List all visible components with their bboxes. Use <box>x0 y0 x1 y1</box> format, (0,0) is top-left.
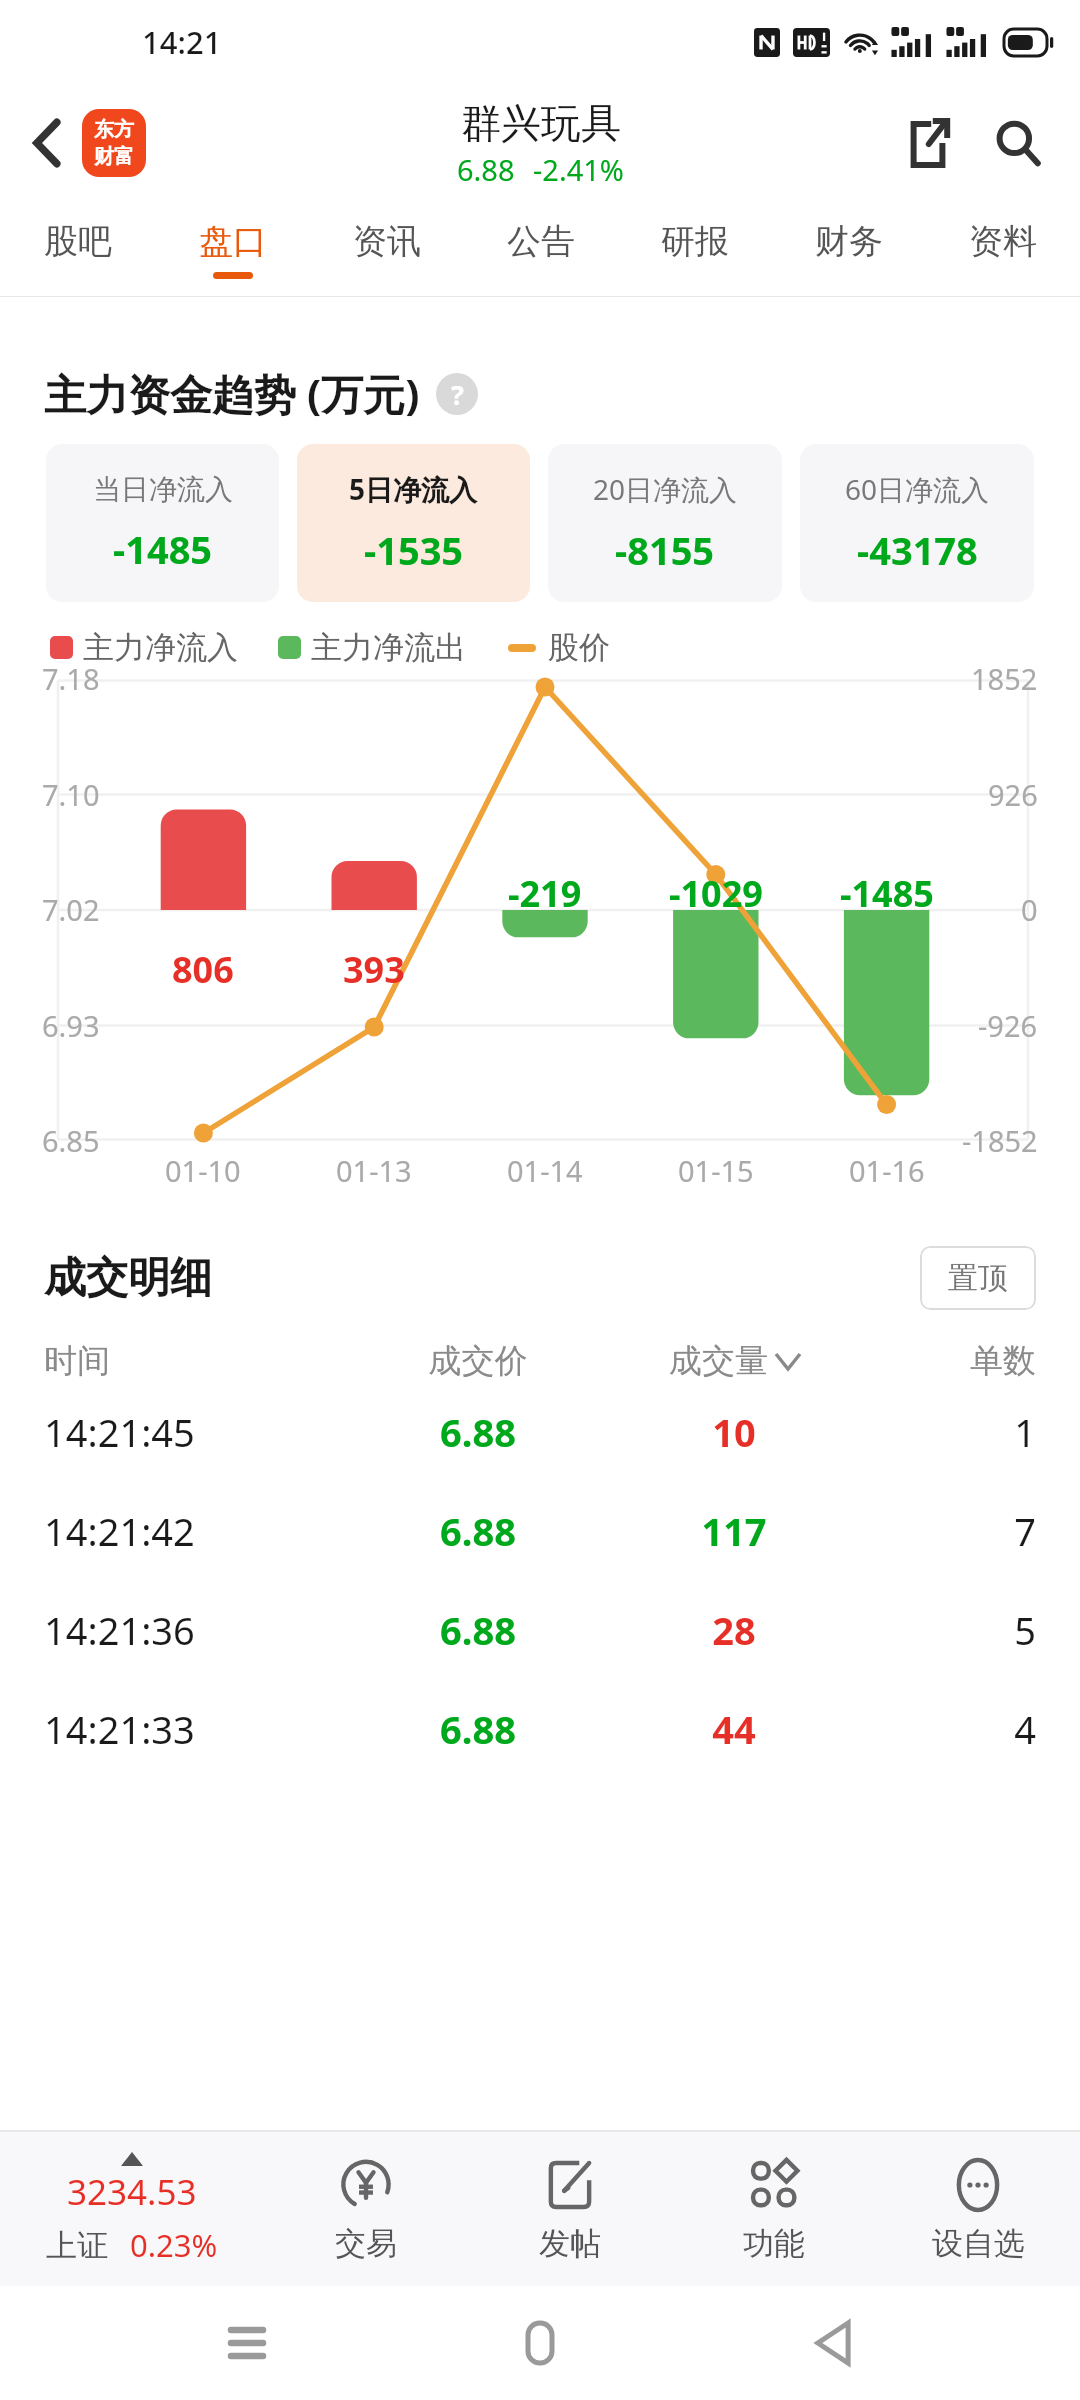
staticText: 3234.53 <box>67 2168 197 2216</box>
staticText: 01-14 <box>507 1151 583 1190</box>
button[interactable]: East Money <box>82 109 146 177</box>
staticText: 群兴玩具 <box>461 98 621 148</box>
staticText: 6.85 <box>42 1121 100 1160</box>
button[interactable]: Back <box>14 110 80 176</box>
button[interactable]: Search <box>980 105 1056 181</box>
staticText: 14:21 <box>142 21 222 63</box>
staticText: 6.93 <box>42 1006 100 1045</box>
staticText: 14:21:42 <box>44 1505 350 1557</box>
staticText: -219 <box>508 869 582 918</box>
button[interactable]: 3234.53 <box>0 2132 264 2286</box>
button[interactable]: 14:21:42 <box>44 1481 1036 1580</box>
button[interactable]: 财务 <box>772 202 926 296</box>
staticText: 置顶 <box>948 1259 1008 1297</box>
staticText: 成交量 <box>669 1340 768 1382</box>
staticText: 股价 <box>548 628 610 667</box>
staticText: 117 <box>606 1505 862 1557</box>
staticText: 60日净流入 <box>845 470 990 508</box>
staticText: 14:21:36 <box>44 1604 350 1656</box>
staticText: 14:21:45 <box>44 1406 350 1458</box>
button[interactable]: Help <box>436 373 478 415</box>
staticText: -2.41% <box>533 150 624 189</box>
staticText: 6.88 <box>350 1406 606 1458</box>
staticText: 设自选 <box>932 2224 1025 2263</box>
staticText: 01-13 <box>336 1151 412 1190</box>
button[interactable]: 置顶 <box>920 1246 1036 1310</box>
staticText: -1029 <box>669 869 763 918</box>
button[interactable]: 交易 <box>264 2132 468 2286</box>
button[interactable]: 14:21:33 <box>44 1679 1036 1778</box>
button[interactable]: 当日净流入 <box>46 444 279 602</box>
button[interactable]: Share <box>890 105 966 181</box>
button[interactable]: 5日净流入 <box>297 444 530 602</box>
staticText: 4 <box>862 1703 1036 1755</box>
staticText: 上证 <box>46 2226 108 2265</box>
staticText: 10 <box>606 1406 862 1458</box>
button[interactable]: 公告 <box>464 202 618 296</box>
staticText: 6.88 <box>350 1703 606 1755</box>
staticText: -1852 <box>962 1121 1038 1160</box>
staticText: 926 <box>988 775 1038 814</box>
staticText: 资讯 <box>353 220 421 263</box>
staticText: 主力净流入 <box>83 628 238 667</box>
staticText: 功能 <box>743 2224 805 2263</box>
button[interactable]: Home <box>494 2297 586 2389</box>
button[interactable]: 资讯 <box>310 202 464 296</box>
staticText: 发帖 <box>539 2224 601 2263</box>
button[interactable]: 盘口 <box>155 202 310 296</box>
button[interactable]: 设自选 <box>876 2132 1080 2286</box>
staticText: 财富 <box>94 144 134 169</box>
button[interactable]: 资料 <box>926 202 1080 296</box>
staticText: 单数 <box>862 1340 1036 1382</box>
button[interactable]: 功能 <box>672 2132 876 2286</box>
staticText: 主力资金趋势 (万元) <box>44 365 420 422</box>
button[interactable]: 研报 <box>618 202 772 296</box>
staticText: 当日净流入 <box>93 472 233 507</box>
button[interactable]: Recents <box>201 2297 293 2389</box>
staticText: 0.23% <box>130 2224 218 2266</box>
staticText: 393 <box>343 945 405 994</box>
staticText: -1485 <box>840 869 934 918</box>
staticText: 6.88 <box>457 150 515 189</box>
staticText: 01-16 <box>849 1151 925 1190</box>
staticText: 5日净流入 <box>349 470 478 508</box>
button[interactable]: 发帖 <box>468 2132 672 2286</box>
staticText: 1 <box>862 1406 1036 1458</box>
staticText: 0 <box>1021 890 1038 929</box>
staticText: 研报 <box>661 220 729 263</box>
staticText: -926 <box>978 1006 1038 1045</box>
staticText: 成交明细 <box>44 1252 212 1305</box>
staticText: 14:21:33 <box>44 1703 350 1755</box>
staticText: 01-15 <box>678 1151 754 1190</box>
staticText: 7.18 <box>42 659 100 698</box>
button[interactable]: 14:21:45 <box>44 1382 1036 1481</box>
button[interactable]: 14:21:36 <box>44 1580 1036 1679</box>
button[interactable]: 股吧 <box>0 202 155 296</box>
staticText: 公告 <box>507 220 575 263</box>
staticText: 时间 <box>44 1340 350 1382</box>
staticText: 806 <box>172 945 234 994</box>
button[interactable]: 20日净流入 <box>548 444 782 602</box>
staticText: 1852 <box>971 659 1038 698</box>
staticText: -1485 <box>113 523 213 575</box>
staticText: 7.02 <box>42 890 100 929</box>
staticText: 财务 <box>815 220 883 263</box>
button[interactable]: Back <box>787 2297 879 2389</box>
staticText: 44 <box>606 1703 862 1755</box>
staticText: 7.10 <box>42 775 100 814</box>
staticText: 交易 <box>335 2224 397 2263</box>
staticText: 资料 <box>969 220 1037 263</box>
staticText: 盘口 <box>199 220 267 263</box>
staticText: ? <box>451 376 464 413</box>
button[interactable]: 60日净流入 <box>800 444 1034 602</box>
staticText: 20日净流入 <box>593 470 738 508</box>
staticText: 6.88 <box>350 1604 606 1656</box>
staticText: 6.88 <box>350 1505 606 1557</box>
staticText: 01-10 <box>165 1151 241 1190</box>
staticText: 成交价 <box>350 1340 606 1382</box>
staticText: -8155 <box>615 524 715 576</box>
staticText: 主力净流出 <box>311 628 466 667</box>
staticText: 7 <box>862 1505 1036 1557</box>
staticText: 5 <box>862 1604 1036 1656</box>
staticText: 东方 <box>94 117 134 142</box>
